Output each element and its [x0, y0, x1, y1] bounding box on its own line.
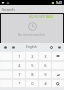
button[interactable]: 4	[13, 62, 25, 69]
staticText: 1	[18, 54, 21, 59]
staticText: *	[18, 81, 21, 86]
staticText: 6	[44, 63, 47, 68]
staticText: #	[44, 81, 47, 86]
staticText: English	[26, 45, 37, 49]
staticText: 0	[31, 81, 34, 86]
button[interactable]: 9	[39, 71, 51, 78]
staticText: 5	[31, 63, 34, 68]
staticText: 9:41	[56, 1, 63, 5]
staticText: Search	[2, 7, 15, 12]
button[interactable]: 8	[26, 71, 38, 78]
button[interactable]: Settings	[48, 44, 54, 50]
button[interactable]: Search	[0, 5, 64, 13]
button[interactable]: 5	[26, 62, 38, 69]
button[interactable]: #	[39, 80, 51, 87]
button[interactable]: 0	[26, 80, 38, 87]
button[interactable]: Emoji	[2, 44, 8, 50]
staticText: 8	[31, 72, 34, 77]
staticText: GO TO SETTINGS	[29, 15, 53, 19]
staticText: No recent searches	[18, 33, 46, 37]
button[interactable]: 6	[39, 62, 51, 69]
button[interactable]: *	[13, 80, 25, 87]
staticText: 3	[44, 54, 47, 59]
button[interactable]: del	[52, 52, 64, 60]
button[interactable]: 3	[39, 52, 51, 60]
button[interactable]: Clipboard	[10, 44, 16, 50]
button[interactable]: Keyboard options	[56, 44, 62, 50]
button[interactable]: 7	[13, 71, 25, 78]
staticText: 7	[18, 72, 21, 77]
button[interactable]: srch	[52, 80, 64, 87]
staticText: 9	[44, 72, 47, 77]
button[interactable]: 1	[13, 52, 25, 60]
button[interactable]: ret	[52, 71, 64, 78]
staticText: 4	[18, 63, 21, 68]
staticText: 2	[31, 54, 34, 59]
button[interactable]: 2	[26, 52, 38, 60]
